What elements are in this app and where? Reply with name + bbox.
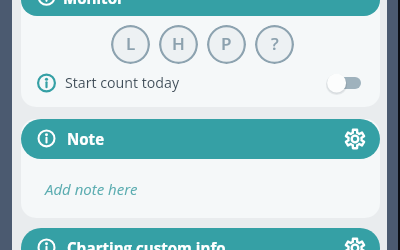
staticText: L bbox=[126, 32, 136, 55]
button[interactable]: Settings bbox=[340, 233, 370, 250]
button[interactable]: L bbox=[111, 25, 150, 64]
button[interactable]: Settings bbox=[340, 124, 370, 154]
staticText: Add note here bbox=[45, 179, 138, 199]
button[interactable]: Start count today toggle bbox=[321, 70, 361, 96]
button[interactable]: P bbox=[207, 25, 246, 64]
staticText: P bbox=[221, 32, 232, 55]
staticText: Note bbox=[67, 129, 105, 150]
staticText: Start count today bbox=[65, 73, 179, 92]
button[interactable]: ? bbox=[255, 25, 294, 64]
staticText: Charting custom info bbox=[67, 238, 226, 250]
button[interactable]: Note bbox=[21, 119, 380, 159]
staticText: H bbox=[172, 32, 185, 55]
button[interactable]: H bbox=[159, 25, 198, 64]
staticText: Monitor bbox=[63, 0, 124, 4]
staticText: ? bbox=[271, 32, 279, 55]
button[interactable]: Start count today bbox=[21, 70, 380, 96]
button[interactable]: Monitor bbox=[21, 0, 380, 16]
button[interactable]: Charting custom info bbox=[21, 228, 380, 250]
